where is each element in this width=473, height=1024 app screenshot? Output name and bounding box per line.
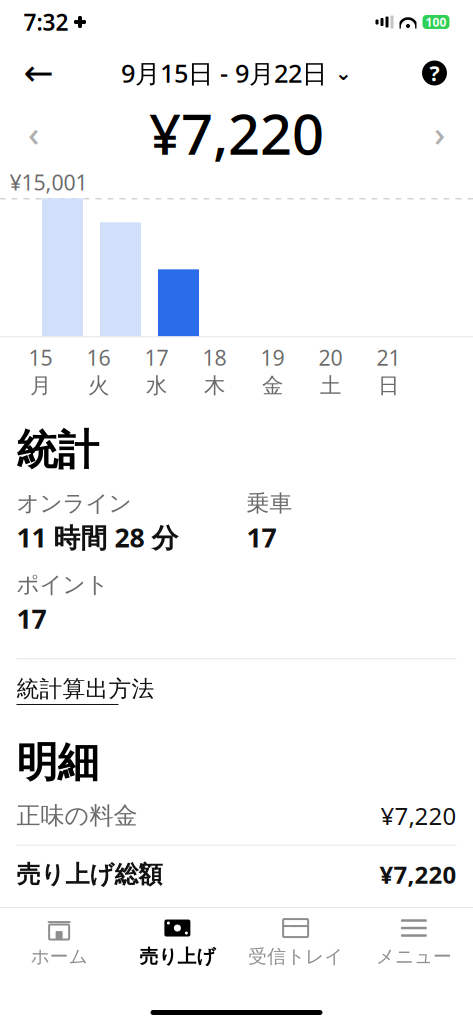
button[interactable]: メニュー [355, 908, 473, 976]
staticText: 17 [16, 601, 46, 636]
staticText: ← [23, 53, 53, 93]
staticText: 売り上げ総額 [16, 860, 162, 889]
button[interactable]: 受信トレイ [236, 908, 355, 976]
button[interactable]: 9月15日 - 9月22日 [115, 50, 358, 96]
staticText: ? [429, 59, 439, 87]
staticText: 15 [28, 343, 52, 372]
staticText: ¥7,220 [380, 800, 456, 832]
staticText: 18 [202, 343, 226, 372]
staticText: ‹ [28, 110, 39, 156]
staticText: 受信トレイ [248, 945, 343, 968]
staticText: 17 [246, 519, 276, 555]
staticText: 木 [204, 373, 225, 399]
staticText: 正味の料金 [16, 801, 137, 830]
staticText: 日 [378, 373, 399, 399]
staticText: 19 [260, 343, 284, 372]
staticText: 16 [86, 343, 110, 372]
staticText: 20 [318, 343, 342, 372]
staticText: › [434, 110, 445, 156]
staticText: 17 [144, 343, 168, 372]
button[interactable]: ヘルプ [411, 50, 457, 96]
button[interactable]: 前の週 [11, 111, 55, 155]
staticText: ¥7,220 [379, 859, 456, 890]
staticText: 統計算出方法 [16, 675, 154, 703]
staticText: ポイント [16, 571, 108, 599]
button[interactable]: 次の週 [417, 111, 461, 155]
button[interactable]: 売り上げ [118, 908, 236, 976]
staticText: 火 [88, 373, 109, 399]
staticText: メニュー [376, 945, 452, 968]
staticText: 統計 [16, 425, 98, 476]
staticText: 明細 [16, 737, 98, 788]
staticText: 100 [425, 14, 446, 30]
staticText: 乗車 [246, 490, 292, 517]
staticText: 月 [30, 373, 51, 399]
staticText: ホーム [31, 945, 88, 968]
staticText: 金 [262, 373, 283, 399]
staticText: 11 時間 28 分 [16, 519, 178, 555]
staticText: オンライン [16, 490, 131, 517]
button[interactable]: 統計算出方法 [16, 659, 456, 711]
staticText: 売り上げ [139, 945, 215, 968]
button[interactable]: 戻る [15, 50, 61, 96]
staticText: 7:32 [23, 7, 68, 37]
staticText: ¥15,001 [9, 168, 87, 196]
staticText: 土 [320, 373, 341, 399]
staticText: ⌄ [335, 62, 352, 84]
button[interactable]: ホーム [0, 908, 118, 976]
staticText: ¥7,220 [149, 96, 324, 170]
staticText: 9月15日 - 9月22日 [121, 56, 327, 90]
staticText: 水 [146, 373, 167, 399]
staticText: 21 [376, 343, 400, 372]
